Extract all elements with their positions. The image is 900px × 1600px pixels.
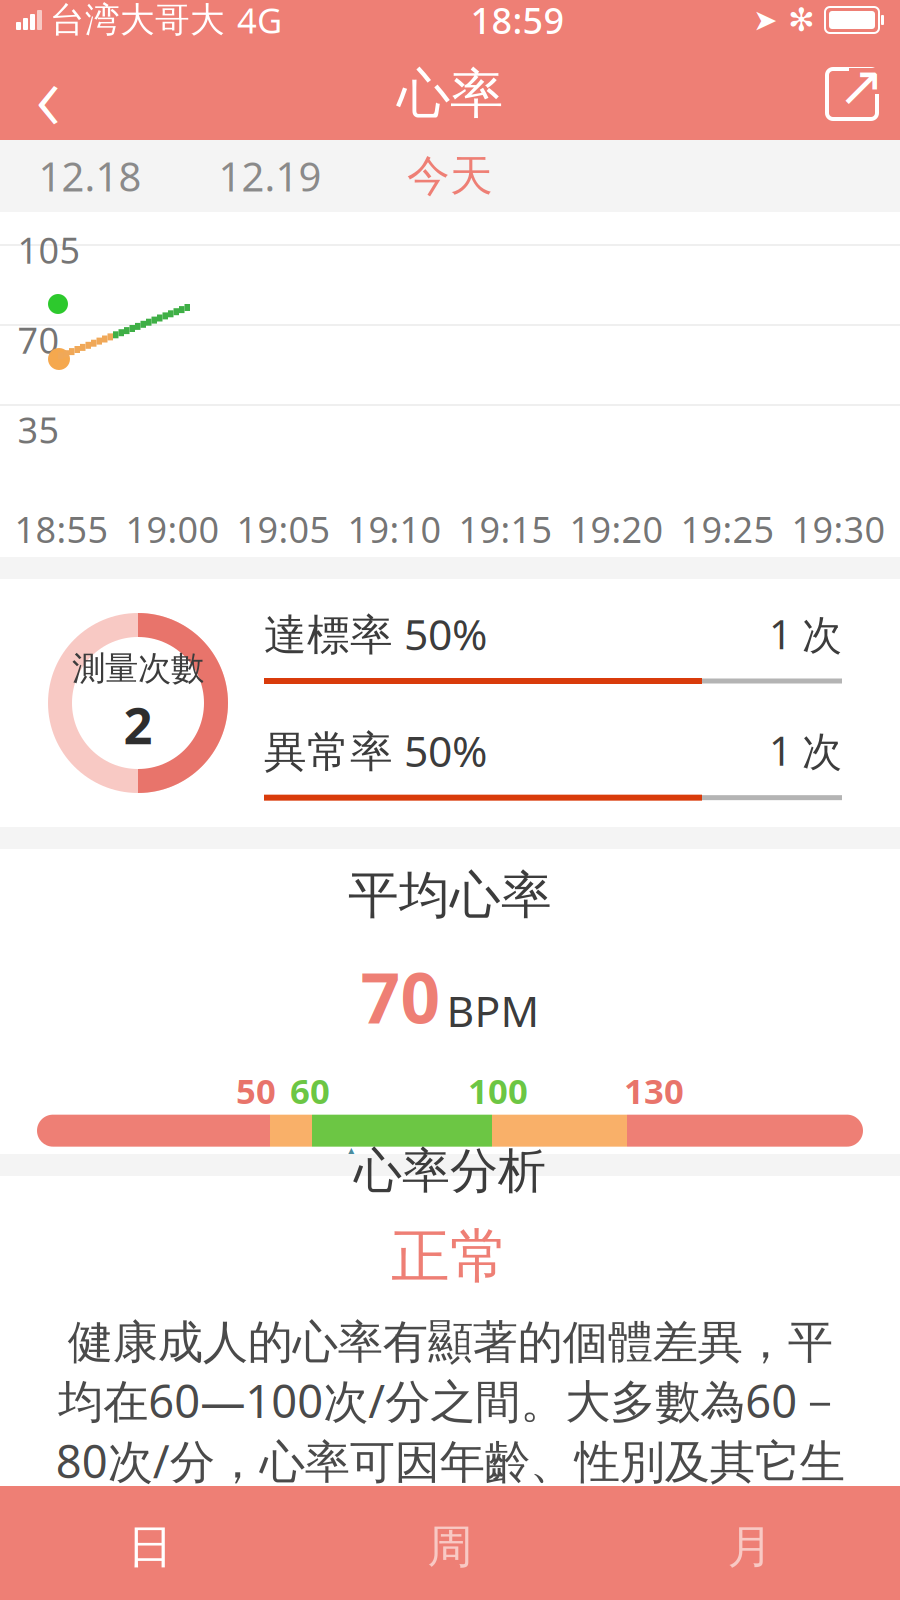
staticText: 正常: [391, 1221, 509, 1293]
staticText: ✻: [788, 2, 815, 38]
staticText: 月: [727, 1519, 772, 1575]
staticText: ▲: [340, 1140, 363, 1173]
staticText: 1 次: [769, 724, 842, 777]
staticText: 12.18: [38, 149, 141, 202]
staticText: 35: [17, 406, 59, 453]
staticText: 19:15: [458, 505, 552, 553]
staticText: 70: [17, 316, 59, 364]
button[interactable]: 月: [600, 1486, 900, 1600]
button[interactable]: 12.19: [180, 140, 360, 212]
staticText: ➤: [753, 3, 778, 37]
staticText: 19:20: [569, 505, 663, 553]
button[interactable]: 12.18: [0, 140, 180, 212]
staticText: 今天: [407, 150, 493, 202]
staticText: 心率分析: [354, 1142, 546, 1201]
staticText: 測量次數: [72, 648, 204, 689]
staticText: 130: [624, 1068, 684, 1114]
staticText: 4G: [237, 0, 282, 43]
staticText: 12.19: [218, 149, 321, 202]
button[interactable]: 日: [0, 1486, 300, 1600]
staticText: ↗: [837, 54, 884, 118]
staticText: 19:05: [236, 505, 330, 553]
staticText: 異常率 50%: [264, 722, 487, 779]
button[interactable]: Back: [0, 48, 96, 140]
button[interactable]: Share: [804, 48, 900, 140]
staticText: 100: [468, 1068, 528, 1114]
staticText: 平均心率: [348, 864, 552, 926]
staticText: 70: [360, 951, 440, 1043]
staticText: 18:59: [470, 0, 564, 44]
staticText: 19:30: [791, 505, 885, 553]
staticText: 1 次: [769, 607, 842, 660]
button[interactable]: 周: [300, 1486, 600, 1600]
button[interactable]: 今天: [360, 140, 540, 212]
staticText: 達標率 50%: [264, 605, 487, 662]
staticText: 2: [123, 691, 152, 758]
staticText: 周: [427, 1519, 472, 1575]
staticText: 18:55: [14, 505, 108, 553]
staticText: 60: [290, 1068, 330, 1114]
staticText: 105: [17, 226, 80, 274]
staticText: 50: [236, 1068, 276, 1114]
staticText: 日: [127, 1519, 172, 1575]
staticText: 台湾大哥大: [50, 0, 225, 41]
staticText: BPM: [446, 982, 539, 1039]
staticText: ‹: [35, 30, 60, 158]
staticText: 健康成人的心率有顯著的個體差異，平均在60—100次/分之間。大多數為60－80…: [55, 1315, 844, 1546]
staticText: 19:25: [680, 505, 774, 553]
staticText: 19:10: [347, 505, 441, 553]
staticText: 心率: [397, 61, 503, 127]
staticText: 19:00: [125, 505, 219, 553]
